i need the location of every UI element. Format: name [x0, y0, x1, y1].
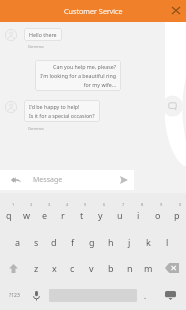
staticText: w — [23, 209, 31, 221]
staticText: m — [144, 262, 153, 274]
button[interactable]: j — [120, 229, 139, 255]
staticText: I'd be happy to help! Is it for a specia… — [29, 103, 95, 119]
staticText: e — [42, 209, 48, 221]
staticText: h — [108, 236, 114, 248]
button[interactable]: s — [27, 229, 45, 255]
staticText: f — [71, 236, 75, 248]
staticText: 5 — [84, 202, 87, 207]
staticText: q — [6, 209, 12, 221]
button[interactable]: x — [45, 255, 63, 281]
staticText: u — [117, 209, 123, 221]
staticText: 3 — [48, 202, 51, 207]
button[interactable]: Reply all — [0, 170, 33, 190]
button[interactable]: a — [9, 229, 27, 255]
staticText: i — [137, 209, 140, 221]
staticText: Customer Service — [64, 6, 123, 16]
button[interactable]: 0 — [167, 193, 186, 229]
button[interactable]: c — [63, 255, 82, 281]
staticText: o — [155, 209, 161, 221]
staticText: 8 — [141, 202, 144, 207]
staticText: r — [61, 209, 65, 221]
staticText: . — [144, 290, 147, 301]
button[interactable]: 7 — [110, 193, 129, 229]
button[interactable]: Send — [114, 170, 134, 190]
staticText: k — [146, 236, 151, 248]
staticText: 9 — [160, 202, 163, 207]
button[interactable]: 3 — [36, 193, 54, 229]
button[interactable]: 2 — [18, 193, 36, 229]
button[interactable]: f — [63, 229, 82, 255]
staticText: Message — [33, 175, 114, 185]
button[interactable]: g — [82, 229, 101, 255]
staticText: n — [127, 262, 133, 274]
button[interactable]: k — [139, 229, 158, 255]
button[interactable]: 1 — [0, 193, 18, 229]
staticText: p — [174, 209, 180, 221]
button[interactable]: l — [158, 229, 177, 255]
staticText: c — [70, 262, 75, 274]
staticText: l — [166, 236, 169, 248]
staticText: Gemma — [28, 44, 44, 50]
button[interactable]: Backspace — [158, 255, 186, 281]
staticText: 4 — [66, 202, 69, 207]
staticText: z — [34, 262, 39, 274]
button[interactable]: Voice input — [29, 281, 43, 310]
button[interactable]: d — [45, 229, 63, 255]
button[interactable]: 8 — [129, 193, 148, 229]
button[interactable]: 5 — [72, 193, 91, 229]
button[interactable]: h — [101, 229, 120, 255]
staticText: x — [52, 262, 57, 274]
staticText: v — [89, 262, 94, 274]
button[interactable]: 9 — [148, 193, 167, 229]
button[interactable]: Hide keyboard — [154, 281, 186, 310]
staticText: 0 — [179, 202, 182, 207]
button[interactable]: ?123 — [0, 281, 29, 310]
staticText: 7 — [122, 202, 125, 207]
staticText: b — [108, 262, 114, 274]
staticText: y — [98, 209, 103, 221]
button[interactable]: 6 — [91, 193, 110, 229]
staticText: 1 — [12, 202, 15, 207]
button[interactable]: m — [139, 255, 158, 281]
staticText: ?123 — [9, 292, 20, 299]
staticText: Gemma — [28, 126, 44, 132]
button[interactable]: z — [27, 255, 45, 281]
button[interactable]: Close — [166, 0, 186, 20]
button[interactable]: v — [82, 255, 101, 281]
staticText: s — [34, 236, 39, 248]
staticText: 6 — [103, 202, 106, 207]
button[interactable]: b — [101, 255, 120, 281]
staticText: 2 — [30, 202, 33, 207]
staticText: Hello there — [29, 31, 57, 38]
staticText: d — [51, 236, 57, 248]
button[interactable]: . — [137, 281, 154, 310]
staticText: Can you help me, please? I'm looking for… — [40, 63, 116, 88]
staticText: t — [80, 209, 84, 221]
staticText: j — [128, 236, 131, 248]
staticText: a — [15, 236, 21, 248]
staticText: g — [89, 236, 95, 248]
button[interactable]: Shift — [0, 255, 27, 281]
button[interactable]: 4 — [54, 193, 72, 229]
button[interactable]: n — [120, 255, 139, 281]
